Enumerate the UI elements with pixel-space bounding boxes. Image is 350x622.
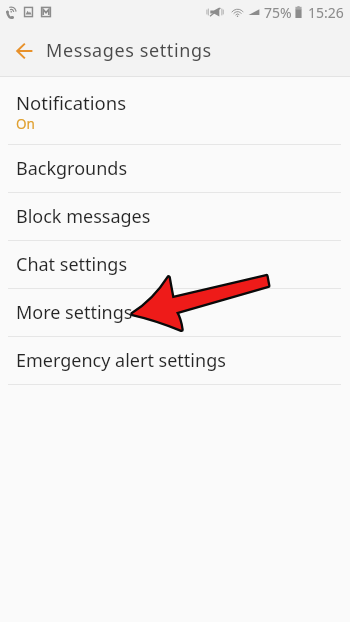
staticText: 75% — [264, 3, 292, 22]
staticText: Block messages — [16, 204, 151, 229]
button[interactable]: Notifications — [0, 77, 350, 144]
button[interactable]: Backgrounds — [0, 145, 350, 192]
staticText: Notifications — [16, 90, 127, 115]
staticText: Messages settings — [46, 38, 212, 63]
button[interactable]: Emergency alert settings — [0, 337, 350, 384]
button[interactable]: Chat settings — [0, 241, 350, 288]
button[interactable]: More settings — [0, 289, 350, 336]
staticText: More settings — [16, 300, 133, 325]
staticText: Backgrounds — [16, 156, 128, 181]
staticText: Chat settings — [16, 252, 128, 277]
button[interactable]: Back — [0, 24, 46, 77]
button[interactable]: Block messages — [0, 193, 350, 240]
staticText: Emergency alert settings — [16, 348, 226, 373]
staticText: On — [16, 115, 35, 133]
staticText: 15:26 — [308, 3, 344, 22]
